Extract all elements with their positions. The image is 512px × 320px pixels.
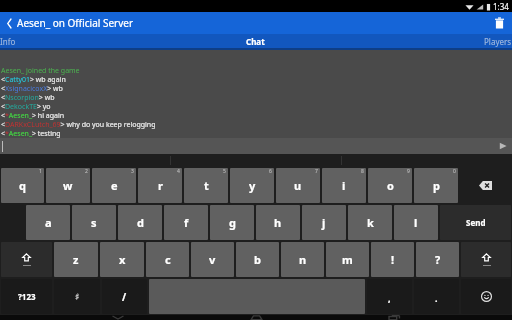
staticText: 3 (131, 168, 134, 175)
button[interactable]: Delete (486, 12, 512, 34)
staticText: 5 (223, 168, 226, 175)
staticText: , (388, 292, 391, 304)
staticText: s (91, 215, 97, 230)
button[interactable]: h (256, 205, 300, 240)
button[interactable]: Chat (170, 34, 341, 48)
button[interactable]: y (230, 168, 274, 203)
button[interactable]: / (102, 279, 147, 314)
button[interactable]: o (368, 168, 412, 203)
button[interactable]: i (322, 168, 366, 203)
staticText: . (435, 292, 438, 304)
staticText: j (322, 215, 326, 230)
button[interactable]: n (281, 242, 324, 277)
button[interactable]: Players (341, 34, 512, 48)
button[interactable]: b (236, 242, 279, 277)
button[interactable]: Send message (494, 138, 512, 154)
staticText: Chat (246, 36, 265, 47)
button[interactable]: r (138, 168, 182, 203)
button[interactable]: k (348, 205, 392, 240)
staticText: ♯ (75, 292, 80, 302)
staticText: 7 (315, 168, 318, 175)
button[interactable]: Hide keyboard (98, 315, 138, 320)
button[interactable]: u (276, 168, 320, 203)
staticText: p (433, 178, 440, 193)
button[interactable]: e (92, 168, 136, 203)
staticText: o (387, 178, 394, 193)
staticText: l (414, 215, 418, 230)
button[interactable]: j (302, 205, 346, 240)
button[interactable]: Back (2, 12, 16, 34)
button[interactable]: t (184, 168, 228, 203)
staticText: x (119, 252, 126, 267)
staticText: Info (0, 36, 16, 47)
button[interactable]: Symbols (54, 279, 100, 314)
staticText: / (122, 290, 127, 304)
staticText: q (19, 178, 26, 193)
button[interactable]: Home (236, 315, 276, 320)
button[interactable]: . (414, 279, 459, 314)
staticText: e (111, 178, 118, 193)
button[interactable]: v (191, 242, 234, 277)
button[interactable]: a (26, 205, 70, 240)
staticText: n (299, 252, 307, 267)
button[interactable]: Info (0, 34, 170, 48)
button[interactable]: z (54, 242, 98, 277)
staticText: c (165, 252, 171, 267)
button[interactable]: c (146, 242, 189, 277)
staticText: <DARKxCLutch_69> why do you keep reloggi… (1, 120, 156, 129)
staticText: ?123 (18, 291, 36, 302)
staticText: g (229, 215, 236, 230)
staticText: 0 (453, 168, 456, 175)
staticText: w (63, 178, 73, 193)
staticText: d (137, 215, 144, 230)
button[interactable]: m (326, 242, 369, 277)
button[interactable]: w (46, 168, 90, 203)
staticText: <Catty01> wb again (1, 75, 66, 84)
staticText: <Nscorpion> wb (1, 93, 55, 102)
staticText: v (209, 252, 216, 267)
button[interactable]: d (118, 205, 162, 240)
button[interactable]: ? (416, 242, 459, 277)
staticText: 6 (269, 168, 272, 175)
staticText: Send (466, 217, 486, 228)
button[interactable]: Shift (1, 242, 52, 277)
staticText: 9 (407, 168, 410, 175)
staticText: b (254, 252, 261, 267)
button[interactable]: Recent apps (374, 315, 414, 320)
button[interactable]: l (394, 205, 438, 240)
staticText: y (249, 178, 256, 193)
button[interactable]: Emoji (461, 279, 511, 314)
staticText: a (45, 215, 52, 230)
staticText: <XsignacicoxX> wb (1, 84, 63, 93)
staticText: u (294, 178, 302, 193)
staticText: 1:34 (493, 1, 509, 12)
button[interactable]: x (100, 242, 144, 277)
staticText: 2 (85, 168, 88, 175)
staticText: Players (484, 36, 512, 47)
staticText: <*Aesen_> testing (1, 129, 61, 138)
staticText: f (184, 215, 189, 230)
staticText: i (342, 178, 346, 193)
button[interactable]: ?123 (1, 279, 52, 314)
button[interactable]: Backspace (460, 168, 511, 203)
button[interactable]: ! (371, 242, 414, 277)
staticText: 8 (361, 168, 364, 175)
button[interactable]: Shift (461, 242, 511, 277)
staticText: t (204, 178, 209, 193)
button[interactable]: f (164, 205, 208, 240)
button[interactable]: g (210, 205, 254, 240)
staticText: ? (435, 252, 441, 267)
button[interactable]: Send (440, 205, 511, 240)
staticText: <*Aesen_> hi again (1, 111, 65, 120)
button[interactable]: p (414, 168, 458, 203)
button[interactable]: s (72, 205, 116, 240)
staticText: z (73, 252, 79, 267)
button[interactable]: q (1, 168, 44, 203)
staticText: Aesen_ on Official Server (17, 16, 134, 30)
button[interactable]: , (367, 279, 412, 314)
staticText: 4 (177, 168, 180, 175)
